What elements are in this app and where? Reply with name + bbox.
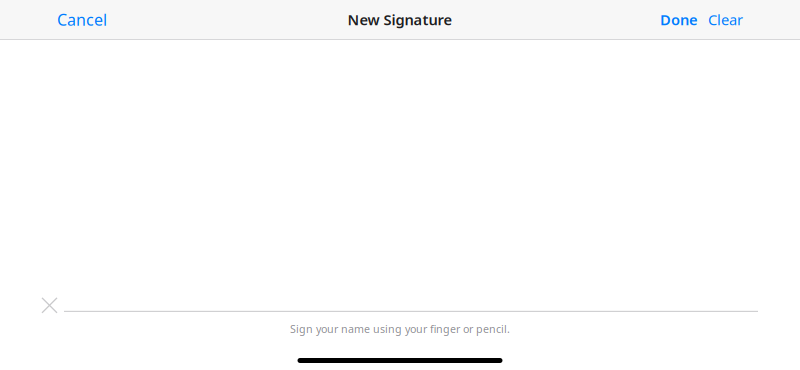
staticText: New Signature: [347, 10, 452, 29]
button[interactable]: Clear: [708, 10, 743, 29]
staticText: Sign your name using your finger or penc…: [290, 322, 510, 336]
button[interactable]: Done: [660, 10, 698, 29]
staticText: Cancel: [57, 9, 107, 30]
staticText: Clear: [708, 10, 743, 29]
button[interactable]: Cancel: [57, 9, 107, 30]
staticText: Done: [660, 10, 698, 29]
